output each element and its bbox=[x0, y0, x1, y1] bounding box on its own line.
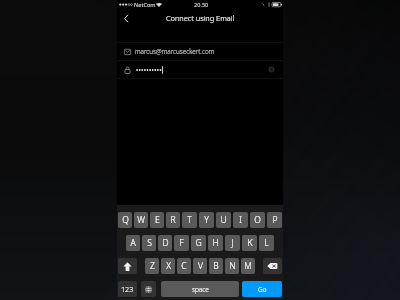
button[interactable]: A bbox=[126, 235, 140, 251]
button[interactable]: S bbox=[142, 235, 156, 251]
staticText: L bbox=[264, 237, 269, 249]
button[interactable]: E bbox=[150, 212, 164, 228]
button[interactable]: G bbox=[191, 235, 206, 251]
staticText: C bbox=[181, 260, 187, 272]
staticText: Connect using Email bbox=[166, 13, 235, 23]
staticText: S bbox=[147, 237, 152, 249]
button[interactable]: marcus@marcuseckert.com bbox=[117, 43, 283, 60]
staticText: Go bbox=[258, 285, 267, 294]
staticText: U bbox=[220, 214, 227, 226]
button[interactable]: K bbox=[242, 235, 257, 251]
button[interactable]: Go bbox=[242, 281, 282, 297]
button[interactable]: C bbox=[177, 258, 191, 274]
staticText: X bbox=[166, 260, 171, 272]
button[interactable]: X bbox=[161, 258, 175, 274]
button[interactable]: O bbox=[250, 212, 265, 228]
button[interactable]: Shift bbox=[118, 258, 137, 274]
button[interactable]: 123 bbox=[118, 281, 137, 297]
button[interactable]: R bbox=[166, 212, 180, 228]
button[interactable]: D bbox=[158, 235, 172, 251]
staticText: Q bbox=[122, 214, 129, 226]
button[interactable]: Q bbox=[118, 212, 132, 228]
button[interactable]: Switch keyboard bbox=[141, 281, 156, 297]
staticText: Z bbox=[150, 260, 155, 272]
staticText: F bbox=[179, 237, 184, 249]
button[interactable]: Backspace bbox=[263, 258, 282, 274]
button[interactable]: T bbox=[182, 212, 197, 228]
button[interactable]: Back bbox=[117, 11, 135, 25]
staticText: marcus@marcuseckert.com bbox=[135, 47, 215, 56]
staticText: V bbox=[198, 260, 203, 272]
button[interactable]: U bbox=[216, 212, 231, 228]
button[interactable]: P bbox=[267, 212, 282, 228]
button[interactable]: J bbox=[225, 235, 240, 251]
button[interactable]: F bbox=[174, 235, 189, 251]
staticText: H bbox=[212, 237, 219, 249]
staticText: space bbox=[192, 285, 209, 294]
button[interactable]: Clear text bbox=[266, 64, 277, 75]
button[interactable]: B bbox=[209, 258, 223, 274]
button[interactable]: M bbox=[241, 258, 255, 274]
button[interactable]: L bbox=[259, 235, 274, 251]
staticText: K bbox=[247, 237, 253, 249]
staticText: T bbox=[187, 214, 192, 226]
staticText: M bbox=[244, 260, 252, 272]
staticText: NetCom bbox=[134, 1, 156, 9]
staticText: B bbox=[213, 260, 219, 272]
staticText: N bbox=[229, 260, 236, 272]
button[interactable]: N bbox=[225, 258, 239, 274]
staticText: 20.50 bbox=[194, 1, 209, 9]
staticText: I bbox=[239, 214, 242, 226]
staticText: 123 bbox=[121, 284, 134, 294]
button[interactable]: Y bbox=[199, 212, 214, 228]
staticText: W bbox=[137, 214, 145, 226]
button[interactable]: space bbox=[161, 281, 239, 297]
staticText: Y bbox=[204, 214, 209, 226]
staticText: P bbox=[272, 214, 278, 226]
staticText: J bbox=[231, 237, 234, 249]
staticText: A bbox=[130, 237, 136, 249]
staticText: G bbox=[195, 237, 202, 249]
button[interactable]: H bbox=[208, 235, 223, 251]
button[interactable]: V bbox=[193, 258, 207, 274]
staticText: E bbox=[155, 214, 160, 226]
button[interactable]: Clear text bbox=[117, 61, 283, 78]
staticText: R bbox=[170, 214, 176, 226]
staticText: D bbox=[162, 237, 169, 249]
staticText: O bbox=[254, 214, 261, 226]
button[interactable]: Z bbox=[145, 258, 159, 274]
button[interactable]: W bbox=[134, 212, 148, 228]
button[interactable]: I bbox=[233, 212, 248, 228]
